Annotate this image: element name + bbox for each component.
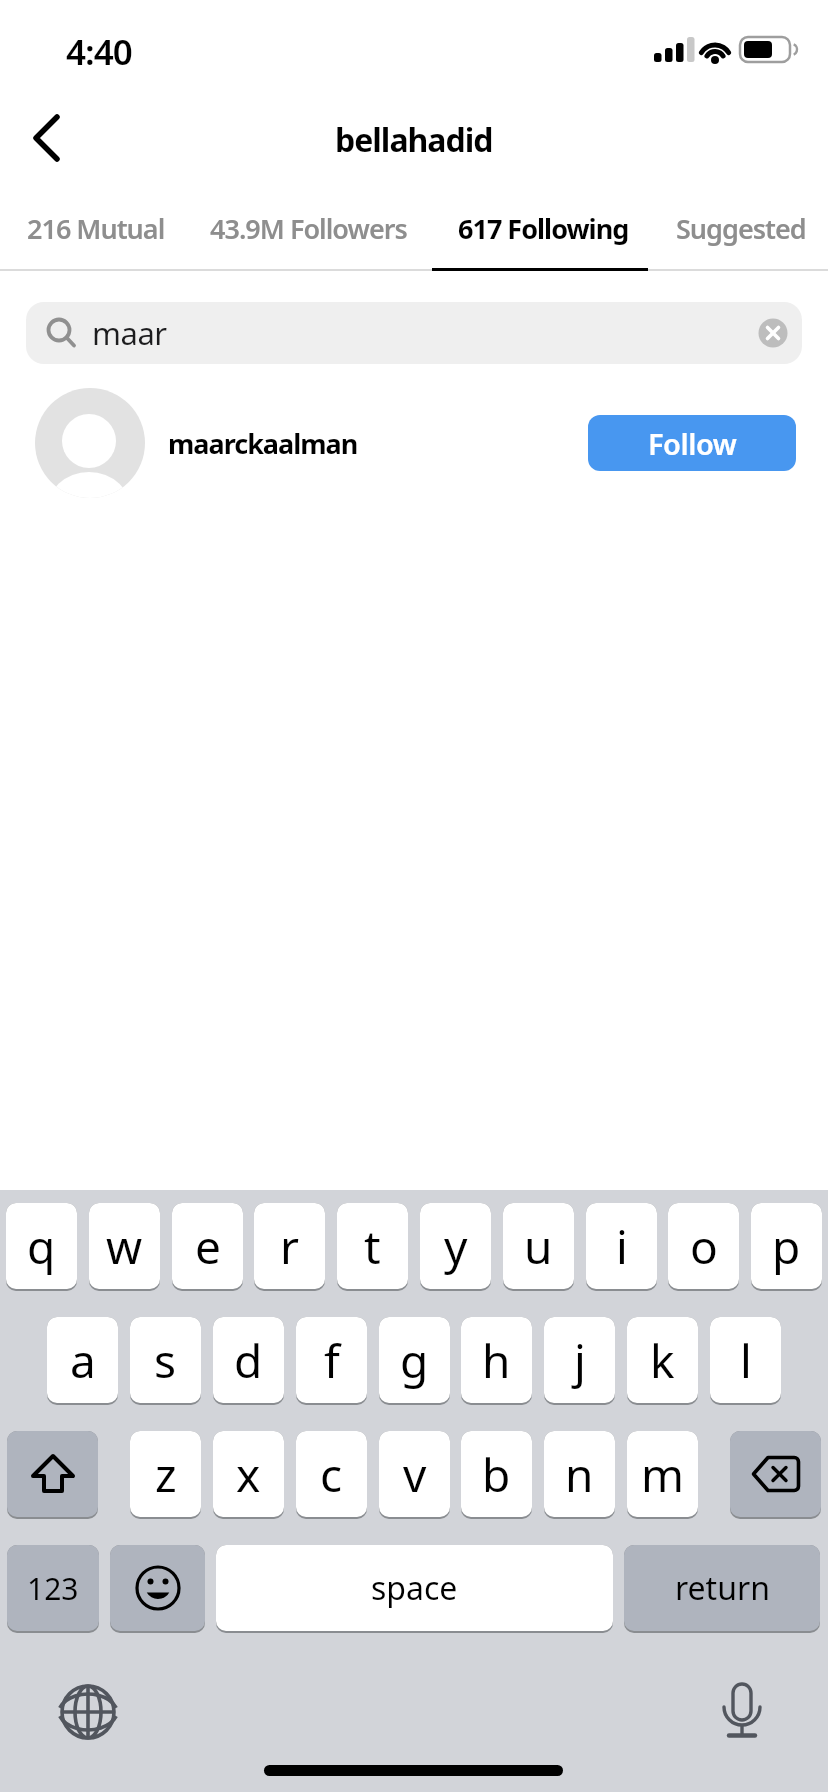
staticText: t [364, 1215, 381, 1278]
staticText: h [482, 1329, 511, 1392]
button[interactable]: maar [26, 302, 802, 364]
button[interactable]: p [751, 1203, 822, 1291]
staticText: n [565, 1443, 594, 1506]
button[interactable]: space [216, 1545, 613, 1633]
staticText: x [236, 1443, 261, 1506]
staticText: o [690, 1215, 718, 1278]
staticText: space [371, 1566, 458, 1610]
button[interactable]: i [586, 1203, 657, 1291]
button[interactable] [7, 1431, 98, 1519]
button[interactable]: 216 Mutual [27, 206, 165, 250]
staticText: z [155, 1443, 177, 1506]
button[interactable]: b [461, 1431, 532, 1519]
button[interactable]: Suggested [676, 206, 806, 250]
button[interactable]: f [296, 1317, 367, 1405]
button[interactable]: 43.9M Followers [210, 206, 407, 250]
staticText: 216 Mutual [27, 210, 165, 247]
button[interactable]: r [254, 1203, 325, 1291]
button[interactable]: s [130, 1317, 201, 1405]
staticText: u [524, 1215, 553, 1278]
button[interactable]: o [668, 1203, 739, 1291]
button[interactable] [110, 1545, 205, 1633]
staticText: maarckaalman [168, 425, 358, 462]
staticText: k [650, 1329, 675, 1392]
button[interactable]: e [172, 1203, 243, 1291]
button[interactable]: j [544, 1317, 615, 1405]
button[interactable]: n [544, 1431, 615, 1519]
staticText: m [641, 1443, 685, 1506]
staticText: bellahadid [335, 118, 493, 162]
staticText: maar [92, 312, 167, 354]
button[interactable]: z [130, 1431, 201, 1519]
button[interactable]: q [6, 1203, 77, 1291]
staticText: 617 Following [458, 210, 629, 247]
button[interactable]: c [296, 1431, 367, 1519]
staticText: y [444, 1215, 468, 1278]
staticText: d [234, 1329, 263, 1392]
button[interactable]: d [213, 1317, 284, 1405]
staticText: e [195, 1215, 221, 1278]
button[interactable]: t [337, 1203, 408, 1291]
button[interactable]: u [503, 1203, 574, 1291]
staticText: c [320, 1443, 343, 1506]
staticText: b [482, 1443, 511, 1506]
staticText: Follow [648, 424, 737, 463]
button[interactable]: 123 [7, 1545, 99, 1633]
button[interactable]: a [47, 1317, 118, 1405]
staticText: 43.9M Followers [210, 210, 407, 247]
button[interactable]: Follow [588, 415, 796, 471]
staticText: f [324, 1329, 340, 1392]
staticText: a [70, 1329, 96, 1392]
button[interactable]: m [627, 1431, 698, 1519]
staticText: Suggested [676, 210, 806, 247]
button[interactable]: y [420, 1203, 491, 1291]
staticText: 123 [27, 1568, 79, 1609]
button[interactable]: h [461, 1317, 532, 1405]
button[interactable]: return [624, 1545, 820, 1633]
button[interactable] [56, 1680, 120, 1744]
button[interactable]: x [213, 1431, 284, 1519]
button[interactable] [710, 1676, 774, 1746]
staticText: 4:40 [66, 28, 132, 76]
staticText: l [740, 1329, 752, 1392]
button[interactable]: v [379, 1431, 450, 1519]
button[interactable]: l [710, 1317, 781, 1405]
button[interactable] [730, 1431, 821, 1519]
staticText: w [106, 1215, 143, 1278]
button[interactable]: 617 Following [458, 206, 629, 250]
staticText: q [27, 1215, 56, 1278]
button[interactable]: k [627, 1317, 698, 1405]
staticText: g [400, 1329, 429, 1392]
button[interactable] [18, 110, 78, 166]
button[interactable]: maarckaalman [0, 386, 828, 500]
staticText: j [574, 1329, 586, 1392]
staticText: i [616, 1215, 628, 1278]
button[interactable]: w [89, 1203, 160, 1291]
staticText: r [280, 1215, 299, 1278]
button[interactable] [745, 305, 801, 361]
staticText: v [403, 1443, 427, 1506]
staticText: return [675, 1566, 770, 1610]
button[interactable]: g [379, 1317, 450, 1405]
staticText: p [772, 1215, 801, 1278]
staticText: s [154, 1329, 177, 1392]
